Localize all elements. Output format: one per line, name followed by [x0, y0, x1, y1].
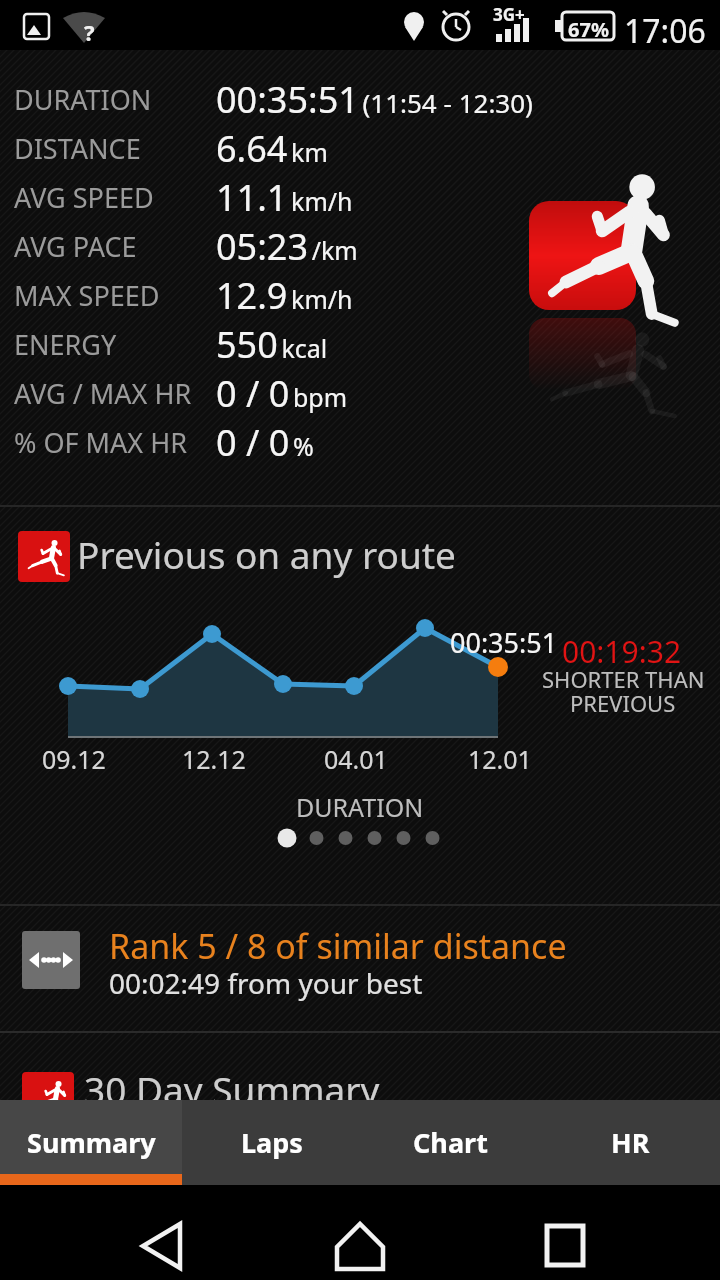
button[interactable]: DURATION — [0, 75, 720, 124]
button[interactable]: HR — [540, 1100, 720, 1185]
staticText: HR — [611, 1124, 650, 1161]
staticText: 00:35:51 — [450, 624, 558, 661]
button[interactable]: DISTANCE — [0, 124, 720, 173]
staticText: 12.9 km/h — [216, 271, 353, 320]
staticText: Previous on any route — [77, 529, 456, 579]
staticText: 09.12 — [42, 742, 106, 776]
staticText: DISTANCE — [14, 130, 141, 167]
button[interactable] — [0, 507, 720, 597]
button[interactable] — [527, 1195, 603, 1271]
button[interactable]: AVG PACE — [0, 222, 720, 271]
button[interactable]: ENERGY — [0, 320, 720, 369]
button[interactable] — [124, 1195, 200, 1271]
staticText: SHORTER THAN — [542, 664, 705, 694]
staticText: 00:35:51 (11:54 - 12:30) — [216, 75, 533, 124]
button[interactable]: MAX SPEED — [0, 271, 720, 320]
staticText: 67% — [568, 16, 609, 43]
staticText: 04.01 — [324, 742, 388, 776]
button[interactable]: AVG SPEED — [0, 173, 720, 222]
button[interactable]: AVG / MAX HR — [0, 369, 720, 418]
staticText: 0 / 0 % — [216, 418, 314, 467]
staticText: 05:23 /km — [216, 222, 358, 271]
staticText: PREVIOUS — [570, 688, 676, 718]
staticText: ENERGY — [14, 326, 117, 363]
staticText: 0 / 0 bpm — [216, 369, 348, 418]
staticText: DURATION — [14, 81, 152, 118]
button[interactable] — [0, 907, 720, 1029]
button[interactable]: % OF MAX HR — [0, 418, 720, 467]
staticText: 12.12 — [182, 742, 246, 776]
staticText: AVG SPEED — [14, 179, 154, 216]
staticText: 11.1 km/h — [216, 173, 353, 222]
staticText: Summary — [27, 1124, 156, 1161]
staticText: Chart — [413, 1124, 488, 1161]
staticText: 30 Day Summary — [84, 1064, 380, 1114]
staticText: MAX SPEED — [14, 277, 160, 314]
staticText: Rank 5 / 8 of similar distance — [109, 923, 567, 969]
button[interactable] — [322, 1195, 398, 1271]
staticText: 12.01 — [468, 742, 532, 776]
staticText: 17:06 — [624, 9, 706, 53]
staticText: 00:19:32 — [562, 631, 682, 672]
staticText: % OF MAX HR — [14, 424, 187, 461]
staticText: DURATION — [296, 790, 424, 824]
staticText: Laps — [241, 1124, 303, 1161]
button[interactable]: Summary — [0, 1100, 182, 1185]
staticText: ? — [84, 17, 95, 47]
staticText: 3G+ — [493, 3, 525, 26]
staticText: 550 kcal — [216, 320, 328, 369]
button[interactable]: Laps — [182, 1100, 361, 1185]
staticText: AVG PACE — [14, 228, 137, 265]
staticText: AVG / MAX HR — [14, 375, 192, 412]
staticText: 6.64 km — [216, 124, 328, 173]
staticText: 00:02:49 from your best — [109, 964, 423, 1002]
button[interactable]: Chart — [361, 1100, 540, 1185]
